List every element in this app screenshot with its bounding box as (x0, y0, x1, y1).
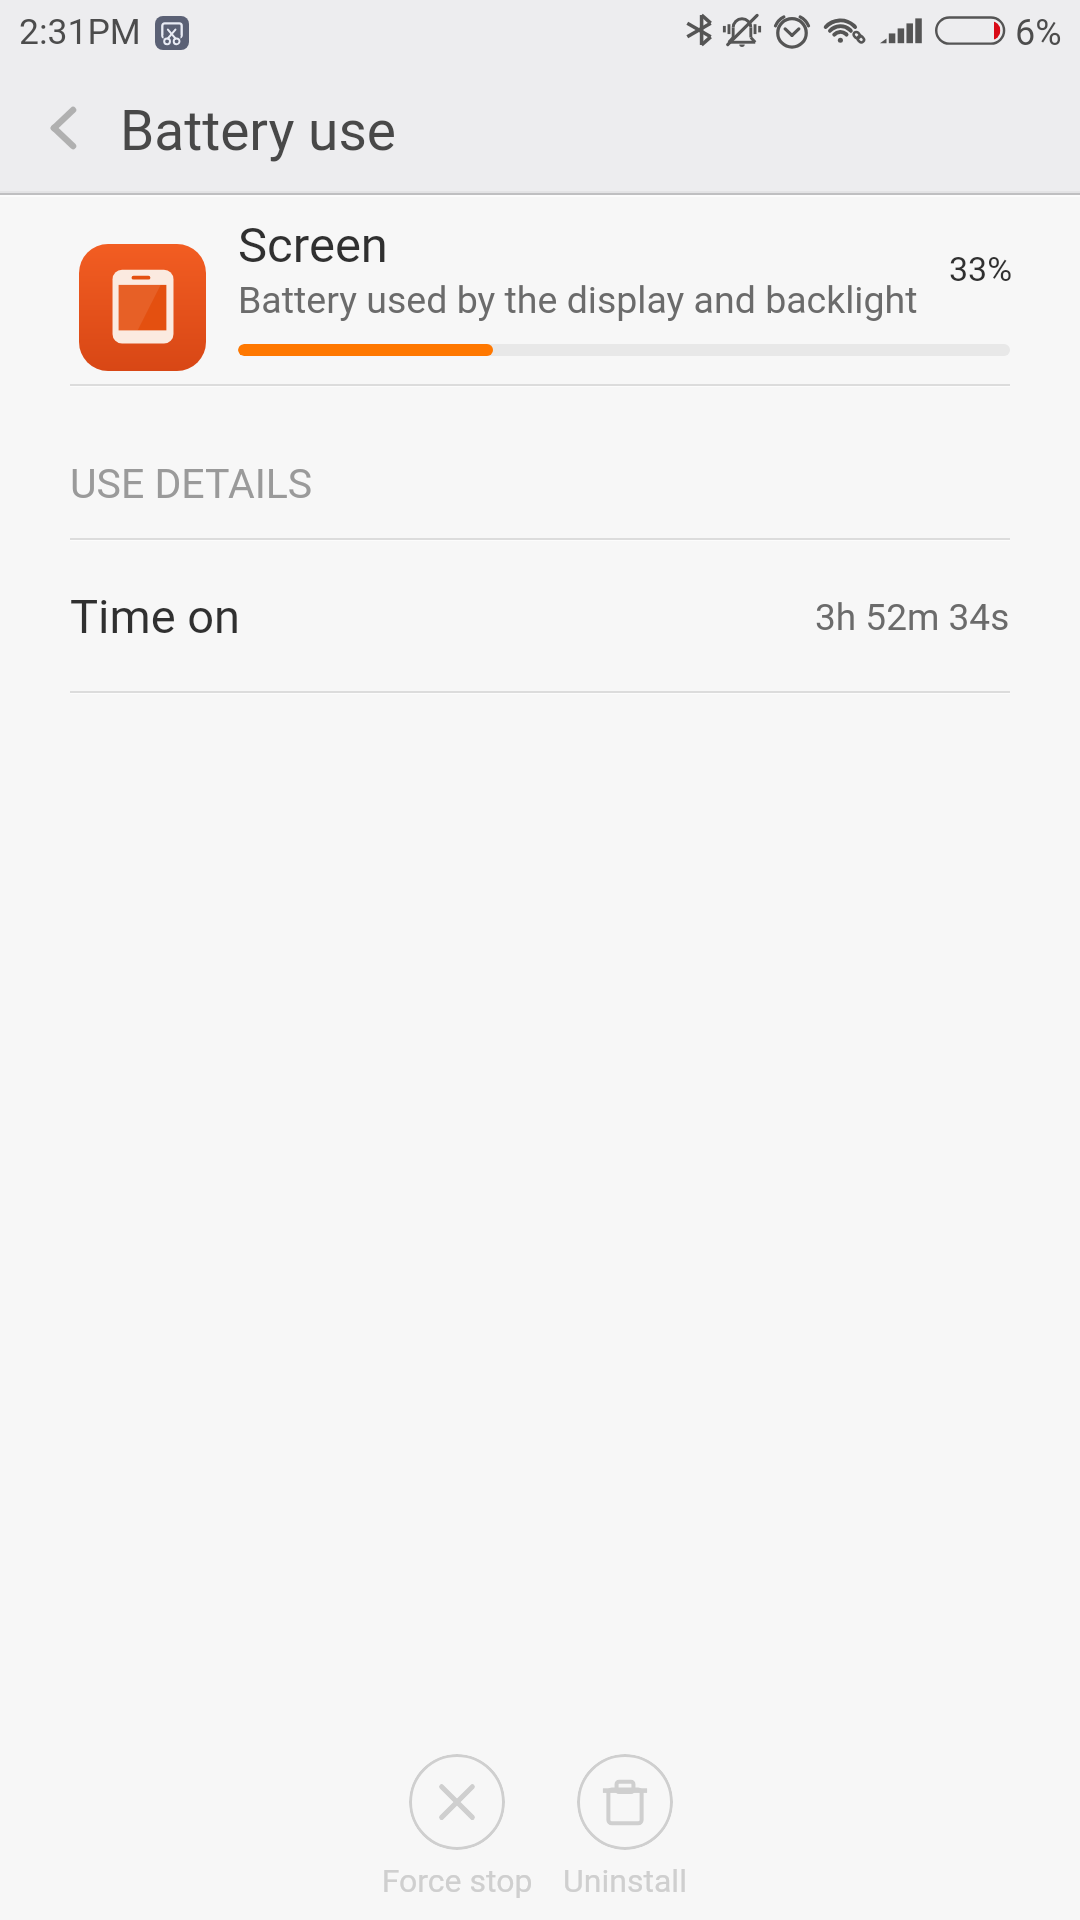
button[interactable]: Back (14, 80, 114, 180)
button[interactable]: Time on (0, 541, 1080, 693)
staticText: Screen (238, 217, 388, 274)
staticText: Battery use (120, 99, 396, 163)
button[interactable]: Uninstall (505, 1754, 745, 1900)
button[interactable]: Force stop (337, 1754, 577, 1900)
staticText: 2:31PM (19, 11, 141, 53)
staticText: Uninstall (505, 1862, 745, 1900)
staticText: 33% (949, 249, 1013, 289)
staticText: 6% (1015, 12, 1062, 54)
staticText: Battery used by the display and backligh… (238, 278, 918, 322)
button[interactable]: Screen (0, 193, 1080, 386)
staticText: Time on (70, 589, 241, 644)
staticText: 3h 52m 34s (815, 596, 1010, 639)
staticText: USE DETAILS (70, 460, 313, 508)
staticText: Force stop (337, 1862, 577, 1900)
